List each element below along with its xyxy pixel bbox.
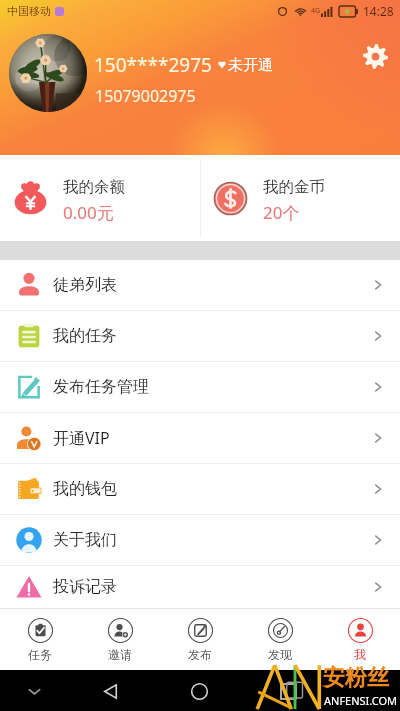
staticText: 未开通 xyxy=(228,56,273,75)
button[interactable]: 徒弟列表 xyxy=(0,260,400,310)
button[interactable]: 我的任务 xyxy=(0,311,400,361)
button[interactable]: 发现 xyxy=(240,609,320,670)
staticText: 安粉丝 xyxy=(323,664,389,692)
staticText: 我的余额 xyxy=(63,177,125,197)
button[interactable]: 发布 xyxy=(160,609,240,670)
staticText: 我的钱包 xyxy=(53,479,117,499)
button[interactable]: 我的金币 xyxy=(200,155,400,241)
staticText: ANFENSI.COM xyxy=(324,693,398,708)
button[interactable]: 我的钱包 xyxy=(0,464,400,514)
staticText: 150****2975 xyxy=(94,52,212,78)
button[interactable]: 开通VIP xyxy=(0,413,400,463)
button[interactable]: 我 xyxy=(320,609,400,670)
staticText: 发布 xyxy=(188,647,212,662)
staticText: 20个 xyxy=(263,201,300,224)
button[interactable]: 邀请 xyxy=(80,609,160,670)
staticText: 邀请 xyxy=(108,647,132,662)
staticText: 15079002975 xyxy=(95,85,196,107)
staticText: 我的任务 xyxy=(53,326,117,346)
button[interactable]: Settings xyxy=(357,38,393,74)
staticText: 徒弟列表 xyxy=(53,275,117,295)
staticText: 发布任务管理 xyxy=(53,377,149,397)
staticText: 0.00元 xyxy=(63,201,114,224)
staticText: 任务 xyxy=(28,647,52,662)
button[interactable]: 关于我们 xyxy=(0,515,400,565)
staticText: 中国移动 xyxy=(7,4,51,18)
staticText: 4G xyxy=(311,6,321,16)
button[interactable]: Hide keyboard xyxy=(14,671,54,711)
staticText: 14:28 xyxy=(363,3,394,19)
button[interactable]: Recent apps xyxy=(268,671,308,711)
staticText: 我 xyxy=(354,647,366,662)
staticText: 发现 xyxy=(268,647,292,662)
button[interactable]: 我的余额 xyxy=(0,155,200,241)
button[interactable]: Avatar xyxy=(9,34,87,112)
staticText: 投诉记录 xyxy=(53,577,117,597)
button[interactable]: 投诉记录 xyxy=(0,566,400,608)
button[interactable]: Home xyxy=(179,671,219,711)
button[interactable]: 发布任务管理 xyxy=(0,362,400,412)
staticText: 开通VIP xyxy=(53,427,110,449)
staticText: 我的金币 xyxy=(263,177,325,197)
staticText: 关于我们 xyxy=(53,530,117,550)
button[interactable]: 任务 xyxy=(0,609,80,670)
button[interactable]: Back xyxy=(90,671,130,711)
